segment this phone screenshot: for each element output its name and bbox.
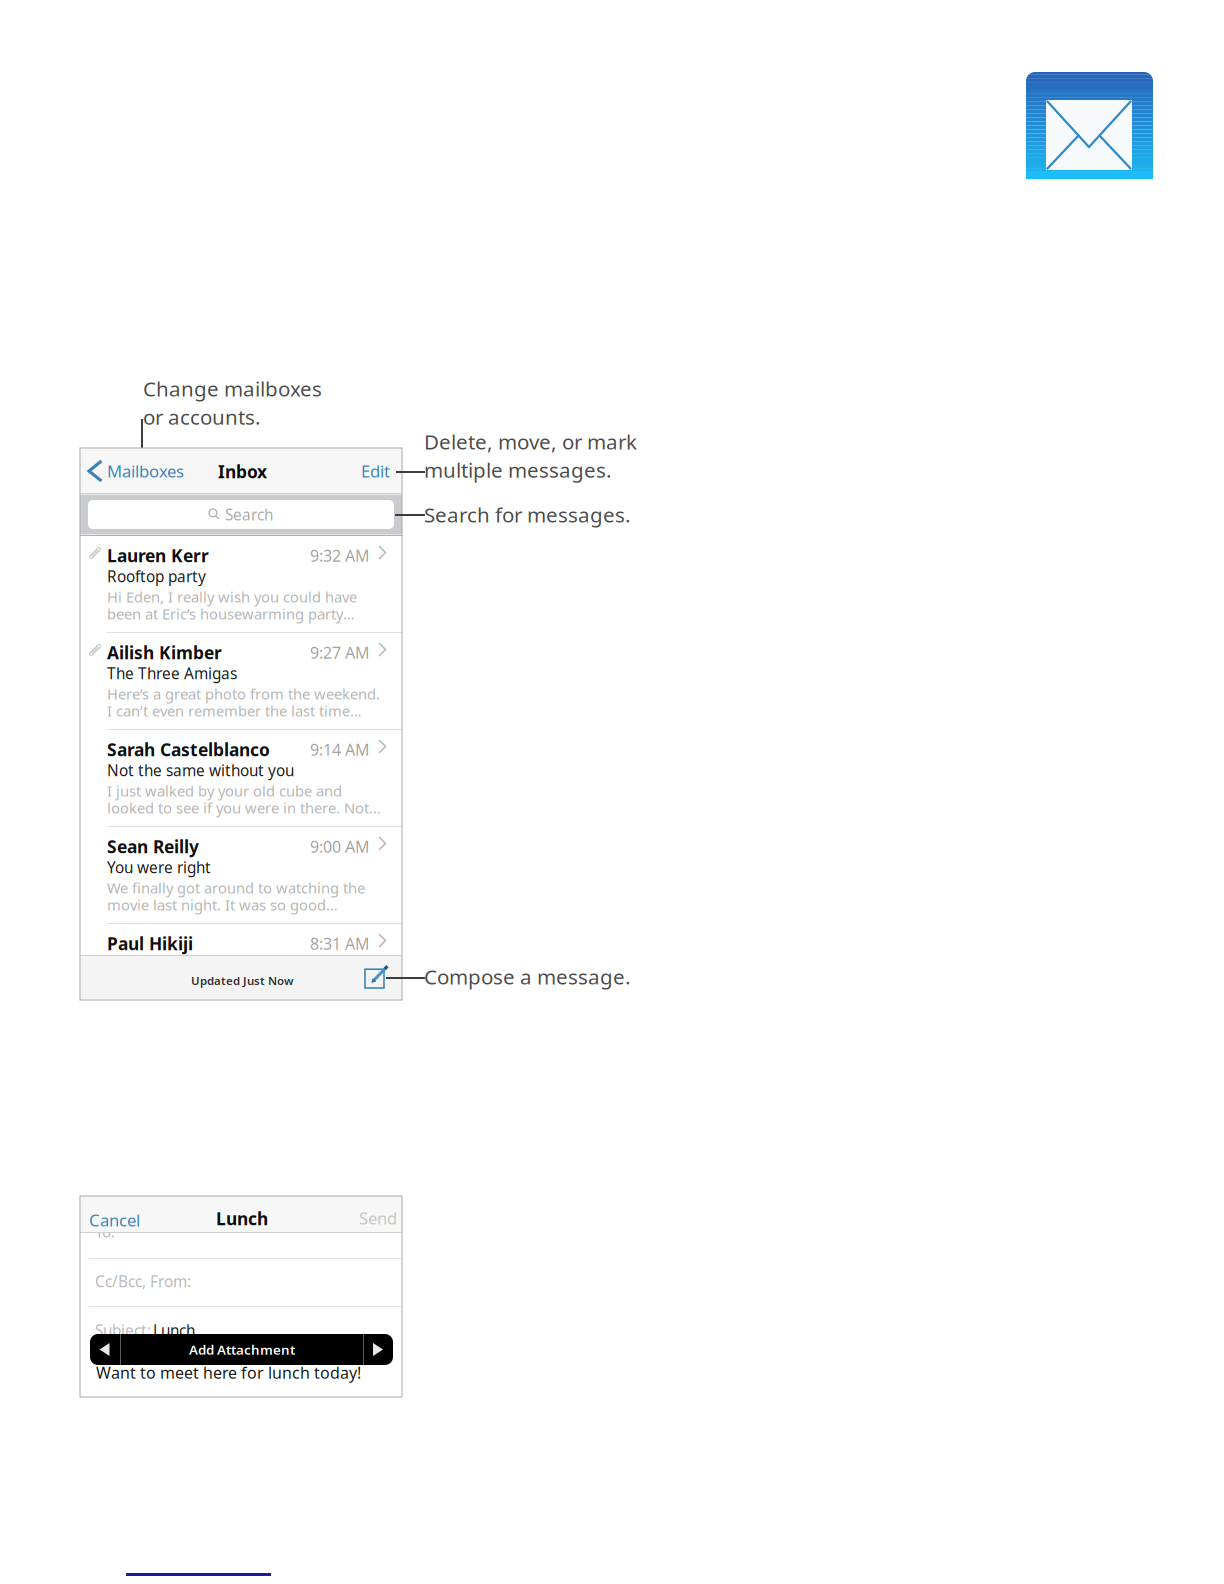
- staticText: Search for messages.: [424, 501, 631, 528]
- staticText: Sarah Castelblanco: [107, 738, 270, 761]
- staticText: Updated Just Now: [191, 973, 294, 988]
- staticText: Send: [359, 1207, 397, 1229]
- button[interactable]: Cancel: [80, 1196, 160, 1232]
- button[interactable]: Compose: [354, 956, 398, 1000]
- staticText: Lunch: [153, 1320, 195, 1340]
- staticText: multiple messages.: [424, 456, 612, 484]
- button[interactable]: Sean Reilly: [80, 827, 402, 923]
- staticText: Lauren Kerr: [107, 544, 209, 567]
- staticText: Want to meet here for lunch today!: [96, 1362, 361, 1383]
- staticText: Edit: [361, 460, 390, 482]
- button[interactable]: Search: [88, 500, 394, 529]
- staticText: Ailish Kimber: [107, 641, 222, 664]
- button[interactable]: Paul Hikiji: [80, 924, 402, 955]
- staticText: 8:31 AM: [310, 933, 370, 954]
- staticText: Compose a message.: [424, 963, 631, 990]
- staticText: Here’s a great photo from the weekend.: [107, 684, 380, 703]
- staticText: Delete, move, or mark: [424, 428, 637, 455]
- staticText: been at Eric’s housewarming party…: [107, 604, 355, 623]
- staticText: 9:14 AM: [310, 739, 370, 760]
- staticText: Cc/Bcc, From:: [95, 1271, 191, 1291]
- staticText: 9:00 AM: [310, 836, 370, 857]
- staticText: 9:32 AM: [310, 545, 370, 566]
- button[interactable]: Mailboxes: [80, 448, 192, 493]
- staticText: Cancel: [89, 1209, 140, 1231]
- staticText: Mailboxes: [107, 460, 184, 482]
- staticText: Lunch: [216, 1207, 268, 1230]
- staticText: We finally got around to watching the: [107, 878, 365, 897]
- staticText: To:: [95, 1221, 115, 1242]
- staticText: Rooftop party: [107, 566, 206, 586]
- staticText: 9:27 AM: [310, 642, 370, 663]
- staticText: movie last night. It was so good…: [107, 895, 338, 914]
- staticText: looked to see if you were in there. Not…: [107, 798, 381, 817]
- staticText: Add Attachment: [189, 1341, 295, 1358]
- staticText: Search: [225, 504, 273, 525]
- staticText: I can’t even remember the last time…: [107, 701, 362, 720]
- button[interactable]: Ailish Kimber: [80, 633, 402, 729]
- staticText: Change mailboxes: [143, 375, 322, 402]
- staticText: Inbox: [218, 460, 267, 483]
- button[interactable]: Sarah Castelblanco: [80, 730, 402, 826]
- button[interactable]: Add Attachment: [121, 1334, 363, 1365]
- staticText: The Three Amigas: [107, 663, 237, 683]
- button[interactable]: Send: [330, 1196, 400, 1232]
- button[interactable]: Next attachment: [364, 1334, 393, 1365]
- staticText: I just walked by your old cube and: [107, 781, 342, 800]
- button[interactable]: Lauren Kerr: [80, 536, 402, 632]
- staticText: Paul Hikiji: [107, 932, 193, 955]
- button[interactable]: Edit: [344, 448, 400, 493]
- staticText: Subject:: [95, 1320, 151, 1340]
- staticText: or accounts.: [143, 403, 261, 431]
- staticText: You were right: [107, 857, 211, 877]
- button[interactable]: Previous attachment: [90, 1334, 120, 1365]
- staticText: Not the same without you: [107, 760, 294, 780]
- staticText: Hi Eden, I really wish you could have: [107, 587, 357, 606]
- staticText: Sean Reilly: [107, 835, 199, 858]
